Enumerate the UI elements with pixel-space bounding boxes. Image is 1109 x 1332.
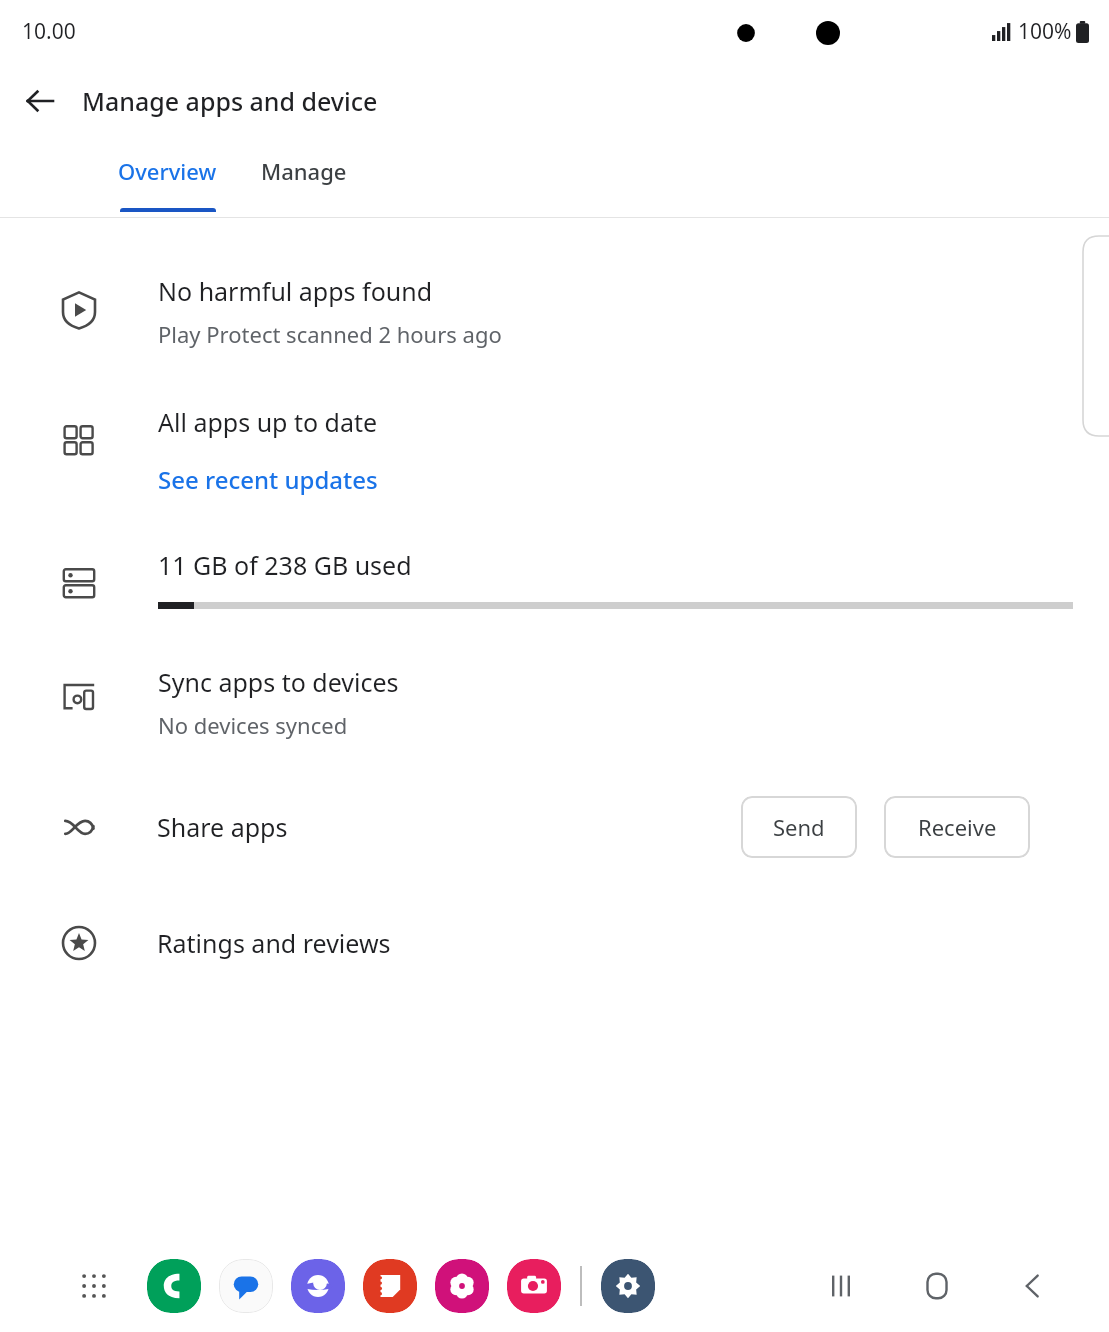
staticText: 100% bbox=[1018, 17, 1072, 46]
button[interactable]: Back bbox=[1001, 1254, 1065, 1318]
button[interactable]: Camera bbox=[507, 1259, 561, 1313]
staticText: Receive bbox=[918, 812, 997, 842]
staticText: Share apps bbox=[157, 810, 288, 844]
button[interactable]: 11 GB of 238 GB used bbox=[0, 548, 1109, 609]
button[interactable]: Settings bbox=[601, 1259, 655, 1313]
button[interactable]: Phone bbox=[147, 1259, 201, 1313]
button[interactable]: Receive bbox=[884, 796, 1030, 858]
staticText: Send bbox=[773, 812, 825, 842]
staticText: Sync apps to devices bbox=[158, 665, 399, 699]
button[interactable]: Gallery bbox=[435, 1259, 489, 1313]
button[interactable]: Home bbox=[905, 1254, 969, 1318]
staticText: Play Protect scanned 2 hours ago bbox=[158, 319, 502, 349]
button[interactable]: Notes bbox=[363, 1259, 417, 1313]
button[interactable]: Sync apps to devices bbox=[0, 665, 1109, 740]
staticText: Manage apps and device bbox=[82, 84, 378, 118]
staticText: No harmful apps found bbox=[158, 274, 433, 308]
staticText: All apps up to date bbox=[158, 405, 378, 439]
button[interactable]: No harmful apps found bbox=[0, 274, 1109, 349]
button[interactable]: Recents bbox=[809, 1254, 873, 1318]
staticText: Overview bbox=[118, 156, 217, 186]
staticText: Ratings and reviews bbox=[157, 926, 391, 960]
button[interactable]: Share apps bbox=[0, 784, 1109, 870]
button[interactable]: Overview bbox=[96, 140, 239, 218]
staticText: 11 GB of 238 GB used bbox=[158, 548, 412, 582]
button[interactable]: See recent updates bbox=[158, 463, 378, 496]
button[interactable]: Messages bbox=[219, 1259, 273, 1313]
button[interactable]: Send bbox=[741, 796, 857, 858]
staticText: Manage bbox=[261, 156, 347, 186]
button[interactable]: Ratings and reviews bbox=[0, 906, 1109, 980]
button[interactable]: Back bbox=[12, 73, 68, 129]
button[interactable]: All apps up to date bbox=[0, 405, 1109, 496]
button[interactable]: Internet bbox=[291, 1259, 345, 1313]
button[interactable]: All apps bbox=[70, 1262, 118, 1310]
staticText: No devices synced bbox=[158, 710, 348, 740]
staticText: 10.00 bbox=[22, 17, 76, 46]
staticText: See recent updates bbox=[158, 463, 378, 496]
button[interactable]: Manage bbox=[239, 140, 369, 218]
